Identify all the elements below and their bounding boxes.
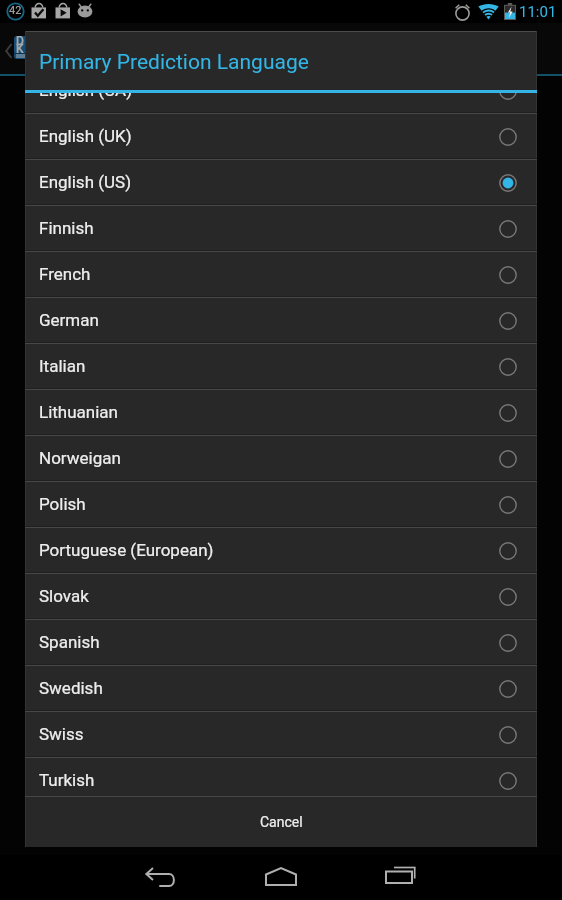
staticText: 42: [9, 4, 22, 17]
button[interactable]: Recent apps: [366, 861, 436, 899]
button[interactable]: Lithuanian: [25, 390, 537, 436]
staticText: English (CA): [39, 93, 133, 100]
staticText: Primary Prediction Language: [39, 50, 309, 75]
button[interactable]: Norweigan: [25, 436, 537, 482]
button[interactable]: English (UK): [25, 114, 537, 160]
button[interactable]: Turkish: [25, 758, 537, 796]
button[interactable]: German: [25, 298, 537, 344]
button[interactable]: Home: [246, 861, 316, 899]
staticText: English (UK): [39, 126, 132, 146]
button[interactable]: Italian: [25, 344, 537, 390]
button[interactable]: Spanish: [25, 620, 537, 666]
button[interactable]: Swedish: [25, 666, 537, 712]
staticText: D: [16, 36, 24, 48]
button[interactable]: Swiss: [25, 712, 537, 758]
staticText: Spanish: [39, 632, 100, 652]
staticText: 11:01: [519, 3, 557, 21]
staticText: Norweigan: [39, 448, 121, 468]
button[interactable]: Back: [126, 861, 196, 899]
staticText: English (US): [39, 172, 132, 192]
button[interactable]: French: [25, 252, 537, 298]
staticText: Swedish: [39, 678, 103, 698]
button[interactable]: English (US): [25, 160, 537, 206]
staticText: Turkish: [39, 770, 95, 790]
staticText: Swiss: [39, 724, 84, 744]
staticText: Cancel: [260, 814, 303, 830]
staticText: Polish: [39, 494, 86, 514]
button[interactable]: Portuguese (European): [25, 528, 537, 574]
button[interactable]: Slovak: [25, 574, 537, 620]
staticText: Finnish: [39, 218, 94, 238]
staticText: Italian: [39, 356, 86, 376]
staticText: Slovak: [39, 586, 89, 606]
staticText: Portuguese (European): [39, 540, 214, 560]
staticText: Lithuanian: [39, 402, 118, 422]
button[interactable]: English (CA): [25, 93, 537, 114]
button[interactable]: Finnish: [25, 206, 537, 252]
staticText: K: [16, 42, 24, 56]
staticText: French: [39, 264, 91, 284]
button[interactable]: Cancel: [25, 797, 537, 847]
button[interactable]: Polish: [25, 482, 537, 528]
staticText: German: [39, 310, 99, 330]
